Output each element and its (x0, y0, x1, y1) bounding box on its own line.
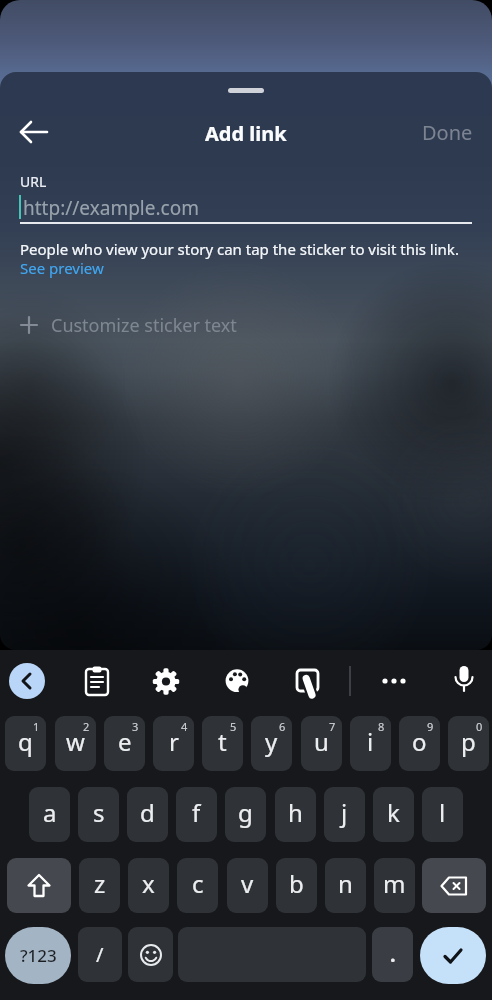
button[interactable]: b (276, 858, 317, 913)
button[interactable]: g (225, 787, 266, 842)
button[interactable]: z (79, 858, 120, 913)
staticText: n (338, 867, 353, 900)
staticText: Done (422, 119, 473, 146)
button[interactable]: h (275, 787, 316, 842)
button[interactable]: a (29, 787, 70, 842)
staticText: k (387, 796, 400, 829)
staticText: g (238, 796, 253, 829)
button[interactable]: w (55, 716, 96, 771)
staticText: Add link (205, 120, 287, 147)
button[interactable]: ?123 (5, 927, 71, 984)
button[interactable] (128, 927, 173, 982)
button[interactable] (14, 114, 52, 150)
staticText: e (118, 725, 132, 758)
button[interactable]: e (104, 716, 145, 771)
staticText: 5 (230, 719, 237, 734)
button[interactable]: n (325, 858, 366, 913)
button[interactable] (292, 665, 324, 705)
staticText: 9 (427, 719, 434, 734)
staticText: URL (20, 172, 47, 191)
staticText: x (142, 867, 155, 900)
button[interactable]: u (301, 716, 342, 771)
staticText: t (218, 725, 227, 758)
button[interactable]: p (448, 716, 489, 771)
button[interactable]: d (127, 787, 168, 842)
button[interactable]: Done (412, 114, 482, 150)
staticText: 4 (181, 719, 188, 734)
staticText: u (314, 725, 329, 758)
staticText: ?123 (20, 944, 57, 967)
staticText: s (93, 796, 105, 829)
staticText: m (383, 867, 406, 900)
button[interactable] (420, 927, 486, 984)
staticText: i (367, 725, 374, 758)
staticText: v (241, 867, 254, 900)
button[interactable]: c (177, 858, 218, 913)
button[interactable] (378, 665, 410, 697)
staticText: 1 (33, 719, 40, 734)
staticText: j (341, 796, 348, 829)
button[interactable]: / (78, 927, 122, 982)
button[interactable]: i (350, 716, 391, 771)
staticText: l (439, 796, 446, 829)
button[interactable]: s (78, 787, 119, 842)
staticText: 6 (279, 719, 286, 734)
button[interactable]: m (374, 858, 415, 913)
staticText: Customize sticker text (51, 313, 237, 338)
button[interactable]: l (422, 787, 463, 842)
staticText: . (390, 941, 396, 968)
staticText: 7 (329, 719, 336, 734)
staticText: a (43, 796, 57, 829)
staticText: 3 (132, 719, 139, 734)
button[interactable]: . (372, 927, 413, 982)
staticText: 2 (83, 719, 90, 734)
button[interactable] (150, 665, 182, 697)
staticText: b (289, 867, 304, 900)
button[interactable]: http://example.com (16, 192, 476, 224)
button[interactable]: q (5, 716, 46, 771)
button[interactable] (7, 858, 71, 913)
staticText: See preview (20, 258, 104, 278)
button[interactable] (448, 663, 480, 699)
staticText: q (18, 725, 33, 758)
button[interactable] (422, 858, 486, 913)
button[interactable] (81, 665, 113, 697)
staticText: h (288, 796, 303, 829)
button[interactable] (9, 663, 45, 699)
button[interactable]: t (202, 716, 243, 771)
staticText: z (94, 867, 106, 900)
button[interactable]: j (324, 787, 365, 842)
button[interactable]: f (176, 787, 217, 842)
staticText: o (412, 725, 427, 758)
button[interactable] (221, 665, 253, 697)
button[interactable]: x (128, 858, 169, 913)
staticText: d (140, 796, 155, 829)
staticText: 8 (378, 719, 385, 734)
button[interactable]: See preview (20, 258, 104, 278)
staticText: 0 (476, 719, 483, 734)
staticText: f (192, 796, 201, 829)
button[interactable]: Customize sticker text (20, 312, 237, 338)
button[interactable]: k (373, 787, 414, 842)
staticText: / (96, 941, 104, 968)
button[interactable]: o (399, 716, 440, 771)
staticText: c (192, 867, 204, 900)
staticText: People who view your story can tap the s… (20, 239, 459, 259)
staticText: y (265, 725, 278, 758)
staticText: r (169, 725, 179, 758)
staticText: http://example.com (23, 195, 199, 221)
staticText: p (461, 725, 476, 758)
button[interactable]: y (251, 716, 292, 771)
button[interactable]: v (227, 858, 268, 913)
staticText: w (66, 725, 85, 758)
button[interactable]: r (153, 716, 194, 771)
